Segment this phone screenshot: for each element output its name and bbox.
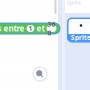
staticText: ois entre (0, 23, 24, 34)
button[interactable]: Zoom in (33, 67, 47, 81)
staticText: 360 (47, 20, 55, 37)
staticText: Sprite (71, 33, 90, 42)
staticText: et (36, 23, 44, 34)
button[interactable]: Sprite (67, 17, 90, 42)
staticText: Sprite (67, 0, 81, 6)
staticText: 1 (28, 24, 32, 33)
